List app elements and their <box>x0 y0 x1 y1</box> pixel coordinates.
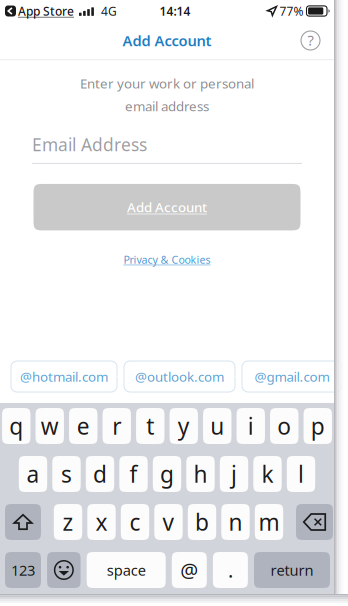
staticText: x <box>95 507 107 537</box>
staticText: m <box>258 507 279 537</box>
button[interactable]: Shift <box>5 504 41 540</box>
button[interactable]: h <box>186 456 215 492</box>
button[interactable]: App Store <box>0 3 74 19</box>
staticText: Email Address <box>32 133 147 156</box>
staticText: @ <box>180 557 198 583</box>
button[interactable]: 123 <box>5 552 41 588</box>
staticText: @gmail.com <box>254 368 329 385</box>
staticText: i <box>248 411 254 441</box>
button[interactable]: z <box>54 504 82 540</box>
staticText: . <box>228 557 233 583</box>
staticText: v <box>162 507 174 537</box>
button[interactable]: l <box>287 456 315 492</box>
button[interactable]: v <box>154 504 183 540</box>
staticText: App Store <box>18 3 74 19</box>
staticText: 14:14 <box>159 3 190 19</box>
staticText: email address <box>125 97 209 115</box>
staticText: Add Account <box>122 31 211 50</box>
button[interactable]: q <box>2 408 30 444</box>
button[interactable]: g <box>153 456 181 492</box>
button[interactable]: Help <box>294 24 326 56</box>
staticText: h <box>193 459 207 489</box>
staticText: b <box>195 507 209 537</box>
staticText: g <box>160 459 174 489</box>
button[interactable]: e <box>69 408 97 444</box>
staticText: q <box>9 411 23 441</box>
staticText: o <box>277 411 291 441</box>
button[interactable]: w <box>36 408 64 444</box>
button[interactable]: @ <box>172 552 207 588</box>
button[interactable]: Add Account <box>33 184 300 230</box>
staticText: @outlook.com <box>135 368 224 385</box>
staticText: ? <box>307 30 313 50</box>
button[interactable]: a <box>19 456 47 492</box>
staticText: Privacy & Cookies <box>123 252 210 267</box>
staticText: u <box>210 411 224 441</box>
button[interactable]: p <box>304 408 332 444</box>
staticText: s <box>61 459 72 489</box>
button[interactable]: u <box>203 408 231 444</box>
button[interactable]: @gmail.com <box>242 361 342 392</box>
staticText: 4G <box>101 3 117 19</box>
button[interactable]: d <box>86 456 114 492</box>
staticText: n <box>228 507 242 537</box>
button[interactable]: s <box>52 456 81 492</box>
staticText: e <box>77 411 90 441</box>
button[interactable]: m <box>255 504 283 540</box>
button[interactable]: space <box>87 552 166 588</box>
button[interactable]: . <box>213 552 248 588</box>
button[interactable]: return <box>254 552 330 588</box>
staticText: r <box>112 411 121 441</box>
button[interactable]: Delete <box>296 504 333 540</box>
staticText: return <box>270 560 313 580</box>
button[interactable]: @hotmail.com <box>11 361 117 392</box>
button[interactable]: k <box>253 456 282 492</box>
button[interactable]: i <box>237 408 265 444</box>
staticText: Add Account <box>127 198 207 216</box>
staticText: p <box>311 411 325 441</box>
staticText: w <box>41 411 59 441</box>
staticText: j <box>231 459 237 489</box>
button[interactable]: @outlook.com <box>124 361 235 392</box>
staticText: t <box>146 411 154 441</box>
staticText: z <box>62 507 73 537</box>
staticText: space <box>107 560 146 580</box>
staticText: f <box>129 459 137 489</box>
staticText: l <box>298 459 304 489</box>
button[interactable]: Privacy & Cookies <box>117 246 216 273</box>
button[interactable]: f <box>119 456 148 492</box>
button[interactable]: t <box>136 408 164 444</box>
button[interactable]: r <box>103 408 131 444</box>
staticText: c <box>129 507 140 537</box>
staticText: k <box>261 459 273 489</box>
button[interactable]: b <box>188 504 216 540</box>
staticText: @hotmail.com <box>20 368 108 385</box>
staticText: a <box>26 459 39 489</box>
staticText: d <box>93 459 107 489</box>
staticText: Enter your work or personal <box>80 74 254 92</box>
staticText: y <box>178 411 190 441</box>
button[interactable]: n <box>221 504 250 540</box>
button[interactable]: j <box>220 456 248 492</box>
button[interactable]: y <box>170 408 198 444</box>
button[interactable]: o <box>270 408 298 444</box>
button[interactable]: Emoji <box>47 552 81 588</box>
staticText: 123 <box>11 560 35 580</box>
button[interactable]: x <box>87 504 116 540</box>
button[interactable]: c <box>121 504 149 540</box>
staticText: 77% <box>279 3 303 19</box>
